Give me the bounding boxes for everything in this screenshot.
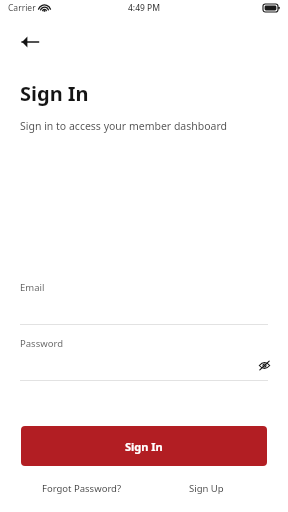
button[interactable]: Back (10, 22, 50, 62)
staticText: Carrier (8, 2, 36, 14)
button[interactable]: Forgot Password? (20, 482, 144, 495)
button[interactable]: Sign In (21, 426, 267, 466)
staticText: Forgot Password? (42, 482, 122, 495)
staticText: Sign In (20, 80, 89, 107)
staticText: Password (20, 337, 63, 350)
staticText: Sign Up (189, 482, 224, 495)
button[interactable]: Show password (254, 355, 274, 375)
staticText: Sign In (125, 439, 163, 454)
staticText: 4:49 PM (128, 2, 161, 14)
staticText: Email (20, 281, 45, 294)
button[interactable]: Password (0, 337, 288, 381)
staticText: Sign in to access your member dashboard (20, 119, 228, 133)
button[interactable]: Sign Up (144, 482, 268, 495)
button[interactable]: Email (0, 281, 288, 325)
